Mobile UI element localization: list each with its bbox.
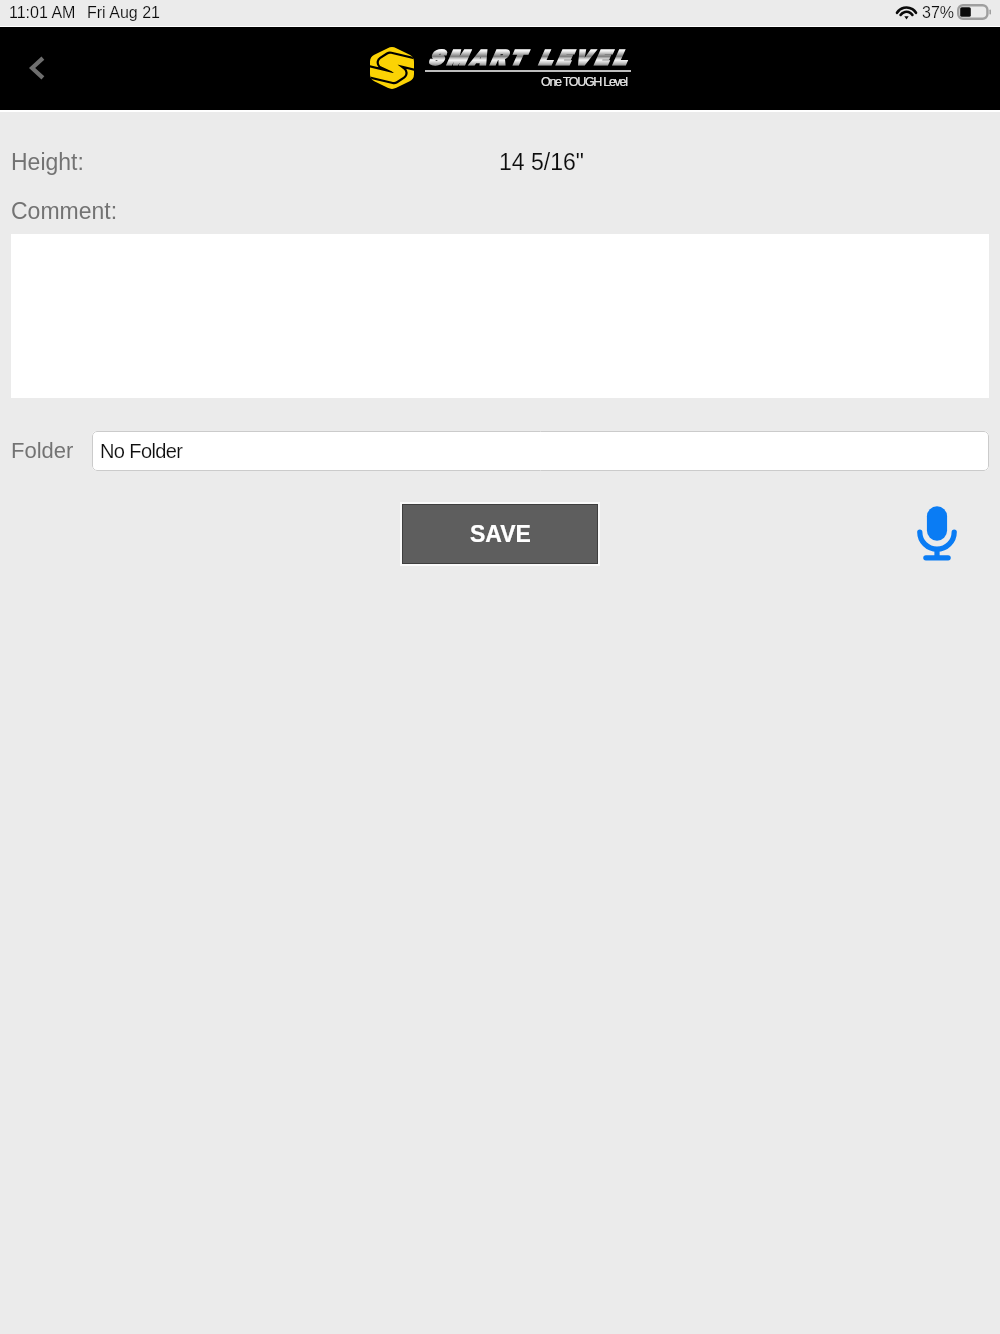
staticText: SMART LEVEL [427,47,629,70]
staticText: 14 5/16" [499,149,584,175]
staticText: 11:01 AM [9,4,76,22]
staticText: One TOUGH Level [541,75,627,89]
staticText: SAVE [470,521,531,547]
staticText: Height: [11,149,84,175]
staticText: Comment: [11,198,118,224]
button[interactable]: SAVE [402,504,598,564]
staticText: Fri Aug 21 [87,4,160,22]
staticText: No Folder [100,440,183,462]
button[interactable]: No Folder [92,431,989,471]
button[interactable]: Dictate comment [916,503,958,561]
button[interactable]: Back [6,27,70,110]
staticText: Folder [11,438,74,463]
staticText: 37% [922,4,955,22]
